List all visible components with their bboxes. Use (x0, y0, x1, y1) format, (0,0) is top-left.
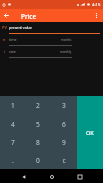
staticText: 6 (62, 120, 66, 129)
button[interactable]: More options (90, 9, 103, 22)
staticText: 9 (62, 138, 66, 147)
button[interactable]: 3 (51, 96, 77, 115)
button[interactable]: 8 (25, 133, 51, 151)
staticText: 3 (62, 101, 66, 110)
button[interactable]: 5 (25, 115, 51, 133)
button[interactable]: 0 (25, 151, 51, 169)
button[interactable]: 9 (51, 133, 77, 151)
staticText: 7 (11, 138, 15, 147)
button[interactable]: n (0, 34, 103, 46)
staticText: 0 (36, 156, 40, 165)
button[interactable]: i (0, 46, 103, 58)
staticText: present value (9, 25, 32, 30)
button[interactable]: 2 (25, 96, 51, 115)
button[interactable]: Navigate back (0, 9, 13, 22)
staticText: c (62, 156, 66, 165)
button[interactable]: Home (45, 170, 58, 183)
staticText: 4 (11, 120, 15, 129)
staticText: 1 (11, 101, 15, 110)
staticText: OK (86, 129, 94, 137)
button[interactable]: Recent apps (73, 170, 86, 183)
staticText: 8 (36, 138, 40, 147)
staticText: time (9, 37, 17, 42)
staticText: 4:15 (92, 2, 101, 8)
staticText: 2 (36, 101, 40, 110)
staticText: months (61, 38, 72, 42)
button[interactable]: 6 (51, 115, 77, 133)
button[interactable]: OK (77, 96, 103, 169)
button[interactable]: PV (0, 22, 103, 34)
staticText: Price (21, 12, 37, 21)
staticText: rate (9, 49, 16, 54)
staticText: PV (2, 25, 7, 30)
button[interactable]: 4 (0, 115, 25, 133)
staticText: 5 (36, 120, 40, 129)
button[interactable]: 7 (0, 133, 25, 151)
staticText: . (12, 156, 14, 165)
button[interactable]: 1 (0, 96, 25, 115)
button[interactable]: Back (17, 170, 30, 183)
staticText: i (4, 49, 6, 54)
staticText: monthly (60, 50, 72, 54)
button[interactable]: c (51, 151, 77, 169)
staticText: n (3, 37, 6, 42)
button[interactable]: . (0, 151, 25, 169)
